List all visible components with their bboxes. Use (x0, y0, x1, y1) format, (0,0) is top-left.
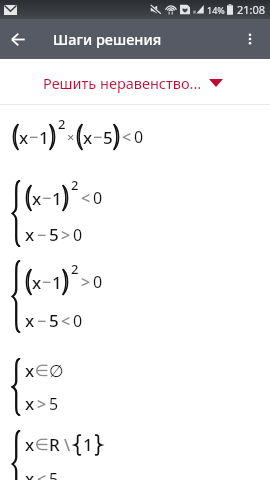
staticText: − (42, 187, 52, 209)
staticText: 5 (49, 223, 59, 246)
staticText: 0 (134, 126, 144, 148)
staticText: 2 (71, 260, 79, 278)
staticText: − (29, 126, 39, 148)
staticText: < (81, 187, 91, 209)
staticText: 0 (73, 310, 83, 332)
staticText: − (42, 271, 52, 293)
staticText: 2 (58, 115, 66, 133)
staticText: < (61, 310, 71, 332)
staticText: x (25, 309, 35, 332)
staticText: 0 (73, 224, 83, 246)
staticText: 0 (93, 187, 103, 209)
staticText: ∈ (35, 435, 49, 454)
staticText: − (93, 126, 103, 148)
staticText: 0 (93, 271, 103, 293)
staticText: \ (64, 434, 71, 456)
staticText: x (25, 359, 35, 382)
staticText: x (25, 433, 35, 456)
staticText: Решить неравенство... (43, 73, 202, 93)
staticText: × (67, 128, 75, 146)
staticText: > (37, 393, 47, 415)
staticText: 1 (52, 187, 62, 210)
staticText: x (32, 271, 42, 294)
staticText: x (32, 187, 42, 210)
staticText: x (19, 126, 29, 149)
staticText: Шаги решения (53, 29, 162, 49)
staticText: x (25, 467, 35, 480)
staticText: x (83, 126, 93, 149)
staticText: ∅ (49, 361, 64, 381)
staticText: < (37, 468, 47, 480)
staticText: 1 (39, 126, 49, 149)
staticText: > (61, 224, 71, 246)
staticText: 5 (49, 468, 59, 480)
staticText: 21:08 (237, 2, 266, 17)
staticText: R (49, 433, 60, 456)
staticText: 1 (52, 271, 62, 294)
staticText: 14% (207, 4, 225, 16)
staticText: ∈ (35, 361, 49, 380)
button[interactable]: More options (230, 19, 270, 59)
staticText: < (122, 126, 132, 148)
staticText: 5 (49, 309, 59, 332)
button[interactable]: Решить неравенство... (0, 59, 270, 104)
staticText: x (25, 223, 35, 246)
staticText: − (37, 224, 47, 246)
staticText: > (81, 271, 91, 293)
staticText: 2 (71, 176, 79, 194)
staticText: − (37, 310, 47, 332)
staticText: 5 (103, 126, 113, 149)
button[interactable]: Back (0, 21, 36, 57)
staticText: x (25, 392, 35, 415)
staticText: 1 (83, 433, 93, 456)
staticText: 5 (49, 393, 59, 415)
